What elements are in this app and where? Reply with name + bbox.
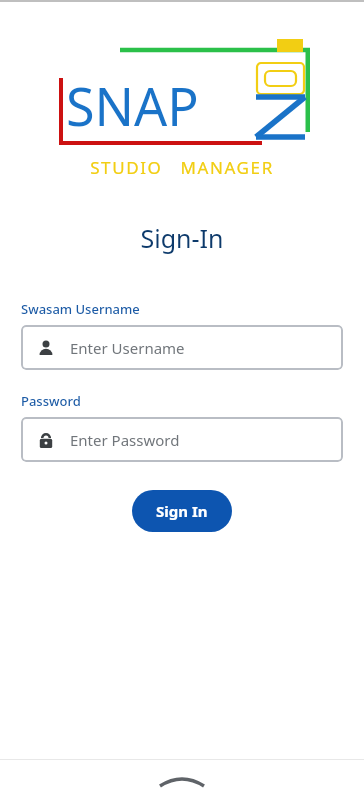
button[interactable]: Username [21, 325, 343, 370]
staticText: Enter Username [70, 338, 185, 358]
staticText: Sign In [156, 501, 208, 521]
button[interactable]: Password [21, 417, 343, 462]
button[interactable]: Sign In [132, 490, 232, 532]
staticText: Sign-In [0, 221, 364, 255]
other: Username [36, 338, 56, 358]
staticText: Password [21, 392, 81, 410]
staticText: Swasam Username [21, 300, 140, 318]
staticText: STUDIO MANAGER [0, 156, 364, 179]
staticText: SNAP [66, 70, 199, 141]
staticText: Enter Password [70, 430, 180, 450]
other: Password [36, 430, 56, 450]
